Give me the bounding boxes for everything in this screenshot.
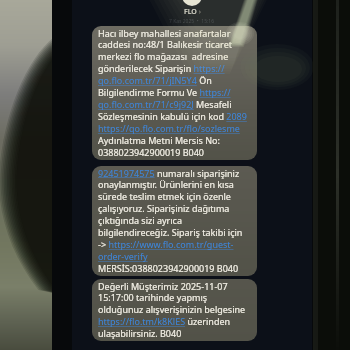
staticText: FLO: [184, 7, 197, 17]
staticText: 7 Kas 2025 • 15:16: [169, 18, 215, 25]
staticText: Değerli Müşterimiz 2025-11-07 15:17:00 t…: [98, 280, 251, 340]
button[interactable]: Hacı ilbey mahallesi anafartalar caddesi…: [92, 26, 257, 160]
button[interactable]: Değerli Müşterimiz 2025-11-07 15:17:00 t…: [92, 279, 257, 341]
staticText: ›: [197, 7, 201, 17]
button[interactable]: FLO: [181, 7, 204, 17]
button[interactable]: 92451974575 numaralı siparişiniz onaylan…: [92, 166, 257, 276]
button[interactable]: FLO contact avatar: [182, 0, 202, 6]
staticText: 92451974575 numaralı siparişiniz onaylan…: [98, 167, 251, 275]
staticText: Hacı ilbey mahallesi anafartalar caddesi…: [98, 27, 251, 159]
